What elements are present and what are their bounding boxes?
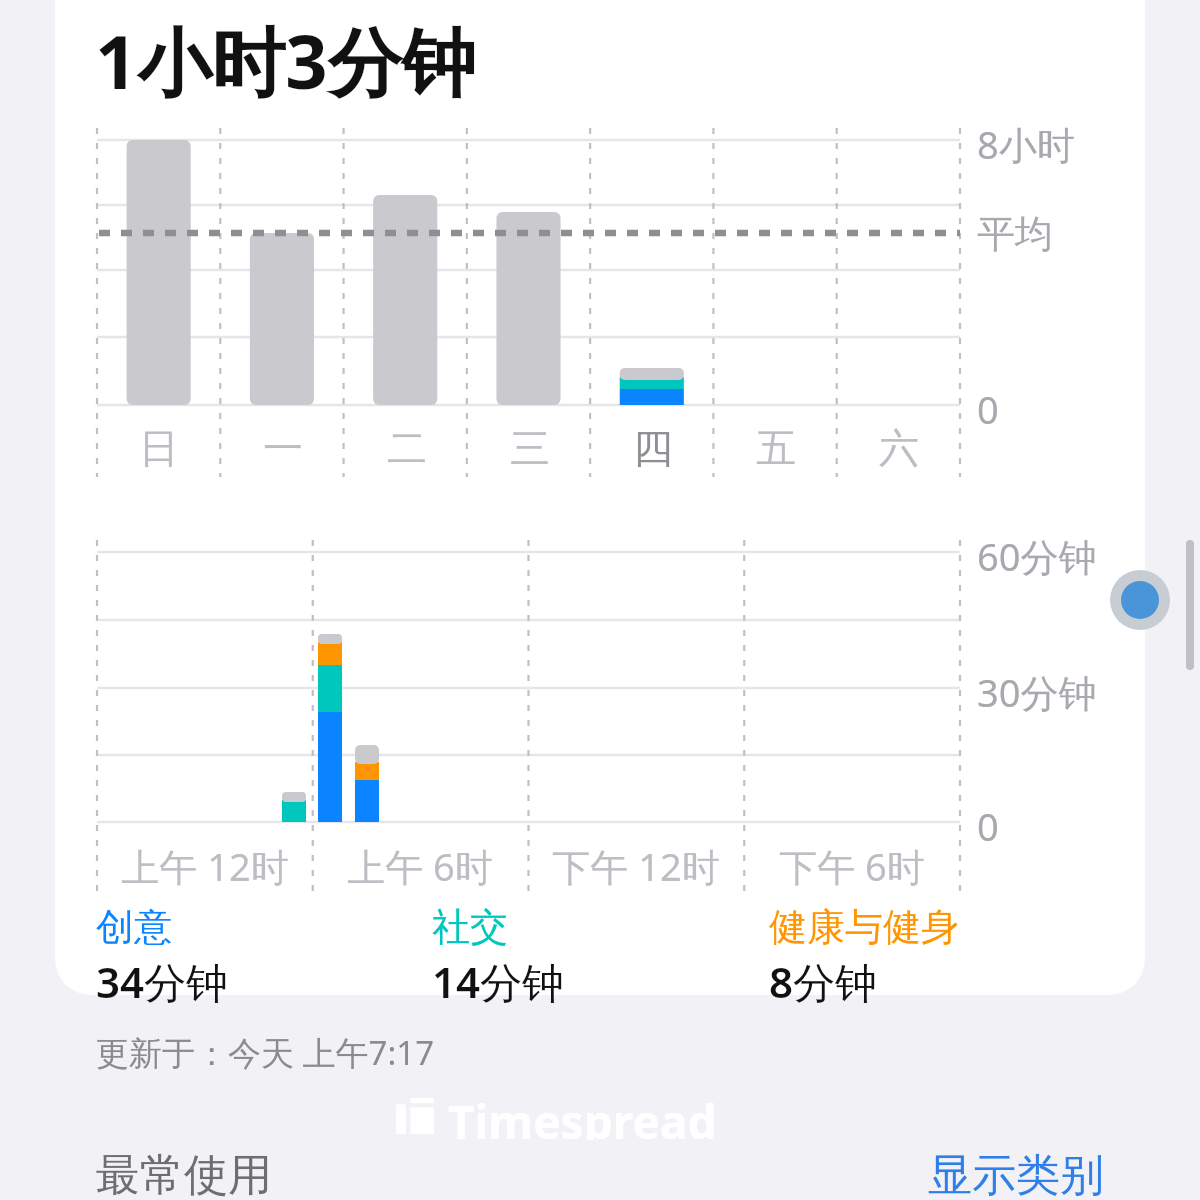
staticText: 下午 12时 [552,840,720,892]
staticText: 1小时3分钟 [95,10,476,111]
staticText: 上午 6时 [347,840,493,892]
staticText: 三 [510,423,550,473]
button[interactable]: 健康与健身 [769,903,1106,1010]
staticText: 日 [139,423,179,473]
staticText: 社交 [432,903,508,951]
staticText: 34分钟 [96,953,229,1010]
button[interactable]: 60分钟 [0,0,1200,1200]
button[interactable]: 8小时 [0,0,1200,1200]
staticText: 最常使用 [96,1148,272,1200]
staticText: 下午 6时 [779,840,925,892]
staticText: 30分钟 [977,666,1097,718]
staticText: 平均 [977,210,1053,258]
staticText: 二 [387,423,427,473]
button[interactable]: 显示类别 [928,1148,1104,1200]
button[interactable]: 创意 [96,903,432,1010]
staticText: 上午 12时 [121,840,289,892]
staticText: Timespread [448,1090,717,1140]
staticText: 60分钟 [977,530,1097,582]
staticText: 六 [879,423,919,473]
staticText: 14分钟 [432,953,565,1010]
staticText: 四 [633,423,673,473]
staticText: 健康与健身 [769,903,959,951]
staticText: 0 [977,383,999,435]
staticText: 8分钟 [769,953,878,1010]
staticText: 更新于：今天 上午7:17 [96,1030,435,1075]
staticText: 8小时 [977,118,1075,170]
button[interactable]: Scroll position [1110,570,1170,630]
staticText: 五 [756,423,796,473]
staticText: 显示类别 [928,1148,1104,1200]
staticText: 一 [263,423,303,473]
staticText: 0 [977,800,999,852]
staticText: 创意 [96,903,172,951]
button[interactable]: 社交 [432,903,769,1010]
